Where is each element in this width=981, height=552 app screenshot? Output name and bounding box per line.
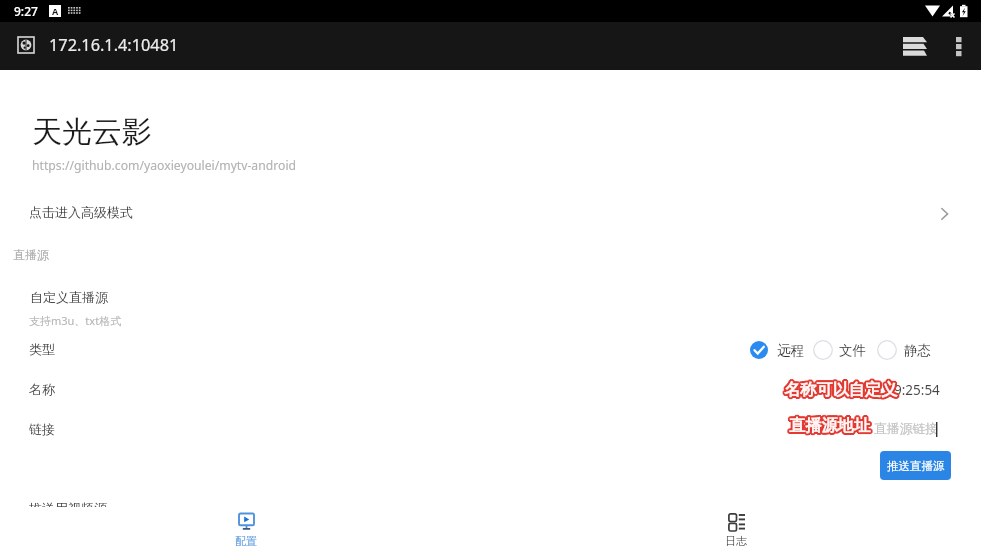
staticText: 直播源地址 bbox=[788, 416, 869, 436]
staticText: 直播源地址 bbox=[787, 416, 868, 436]
button[interactable]: 配置 bbox=[196, 507, 296, 552]
staticText: 名称可以自定义 bbox=[786, 380, 900, 400]
button[interactable]: 文件 bbox=[813, 340, 866, 360]
staticText: 名称可以自定义 bbox=[784, 379, 898, 399]
button[interactable]: 推送直播源 bbox=[880, 451, 951, 480]
staticText: 直播源地址 bbox=[791, 415, 872, 435]
staticText: 直播源地址 bbox=[789, 417, 870, 437]
staticText: 静态 bbox=[904, 342, 931, 359]
staticText: 直播源地址 bbox=[790, 417, 871, 437]
staticText: 配置 bbox=[235, 534, 257, 548]
staticText: 直播源 bbox=[13, 247, 49, 262]
button[interactable]: 远程 bbox=[750, 341, 804, 359]
staticText: 远程 bbox=[777, 342, 804, 359]
staticText: 天光云影 bbox=[32, 113, 152, 151]
staticText: 直播源地址 bbox=[789, 414, 870, 434]
staticText: 名称可以自定义 bbox=[783, 380, 897, 400]
staticText: 直播源地址 bbox=[789, 415, 870, 435]
staticText: 直播源地址 bbox=[790, 413, 871, 433]
staticText: 直播源地址 bbox=[788, 415, 869, 435]
staticText: 名称可以自定义 bbox=[785, 379, 899, 399]
staticText: 名称可以自定义 bbox=[782, 380, 896, 400]
staticText: https://github.com/yaoxieyoulei/mytv-and… bbox=[32, 157, 297, 174]
staticText: 名称 bbox=[29, 381, 55, 397]
staticText: 支持m3u、txt格式 bbox=[29, 313, 122, 328]
staticText: 直播源地址 bbox=[788, 414, 869, 434]
staticText: 点击进入高级模式 bbox=[29, 204, 133, 220]
staticText: 名称可以自定义 bbox=[783, 377, 897, 397]
staticText: 9:27 bbox=[14, 3, 38, 19]
staticText: 文件 bbox=[839, 342, 866, 359]
staticText: 名称可以自定义 bbox=[782, 378, 896, 398]
staticText: 直播源地址 bbox=[790, 416, 871, 436]
staticText: 直播源地址 bbox=[789, 416, 870, 436]
staticText: 直播源地址 bbox=[787, 414, 868, 434]
staticText: 直播源地址 bbox=[790, 414, 871, 434]
staticText: 直播源地址 bbox=[790, 415, 871, 435]
button[interactable]: Switch tabs bbox=[893, 32, 937, 60]
staticText: 名称可以自定义 bbox=[784, 379, 898, 399]
staticText: 名称可以自定义 bbox=[783, 379, 897, 399]
button[interactable]: 日志 bbox=[686, 507, 786, 552]
staticText: 名称可以自定义 bbox=[784, 380, 898, 400]
staticText: 直播源地址 bbox=[789, 413, 870, 433]
staticText: 直播源地址 bbox=[788, 413, 869, 433]
button[interactable]: 9:25:54 bbox=[800, 376, 950, 400]
staticText: 名称可以自定义 bbox=[786, 378, 900, 398]
staticText: 直播源地址 bbox=[791, 416, 872, 436]
button[interactable]: 点击进入高级模式 bbox=[0, 191, 981, 235]
staticText: 名称可以自定义 bbox=[785, 380, 899, 400]
staticText: 直播源地址 bbox=[788, 417, 869, 437]
staticText: 名称可以自定义 bbox=[785, 378, 899, 398]
staticText: 名称可以自定义 bbox=[786, 379, 900, 399]
staticText: 名称可以自定义 bbox=[784, 381, 898, 401]
staticText: 推送用视频源 bbox=[29, 500, 107, 516]
staticText: 名称可以自定义 bbox=[782, 379, 896, 399]
staticText: 名称可以自定义 bbox=[783, 381, 897, 401]
staticText: 直播源地址 bbox=[791, 414, 872, 434]
staticText: 172.16.1.4:10481 bbox=[49, 34, 179, 56]
button[interactable]: More options bbox=[941, 32, 977, 60]
staticText: 名称可以自定义 bbox=[785, 377, 899, 397]
button[interactable]: 静态 bbox=[877, 340, 931, 360]
staticText: 直播源地址 bbox=[787, 415, 868, 435]
staticText: A bbox=[52, 5, 59, 17]
staticText: 名称可以自定义 bbox=[785, 381, 899, 401]
staticText: 9:25:54 bbox=[894, 381, 940, 399]
staticText: 直播源链接 bbox=[874, 421, 938, 437]
staticText: 直播源地址 bbox=[789, 415, 870, 435]
staticText: 推送直播源 bbox=[887, 459, 945, 473]
staticText: 名称可以自定义 bbox=[783, 378, 897, 398]
staticText: 链接 bbox=[29, 421, 55, 437]
staticText: 名称可以自定义 bbox=[784, 377, 898, 397]
staticText: 类型 bbox=[29, 341, 55, 357]
button[interactable]: 直播源链接 bbox=[800, 417, 950, 441]
staticText: 名称可以自定义 bbox=[784, 378, 898, 398]
staticText: 日志 bbox=[725, 534, 747, 548]
staticText: 自定义直播源 bbox=[30, 289, 108, 305]
